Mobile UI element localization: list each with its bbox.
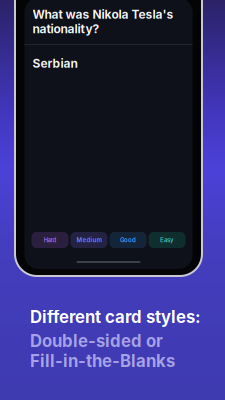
staticText: What was Nikola Tesla's nationality? [32, 7, 173, 36]
staticText: Good [120, 236, 136, 244]
staticText: Double-sided or [30, 331, 163, 351]
staticText: Hard [43, 236, 56, 244]
button[interactable]: Easy [148, 232, 185, 248]
staticText: Different card styles: [30, 307, 201, 327]
staticText: Medium [76, 236, 101, 244]
staticText: Fill-in-the-Blanks [30, 351, 175, 371]
button[interactable]: Hard [31, 232, 68, 248]
button[interactable]: Medium [70, 232, 107, 248]
staticText: Easy [160, 236, 174, 244]
staticText: Serbian [32, 56, 77, 70]
button[interactable]: Good [109, 232, 146, 248]
